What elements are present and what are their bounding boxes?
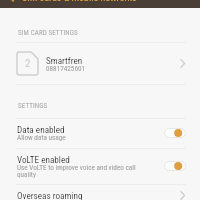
staticText: Data enabled: [17, 124, 65, 135]
staticText: Smartfren: [46, 55, 83, 66]
button[interactable]: 2: [0, 42, 200, 84]
staticText: Use VoLTE to improve voice and video cal…: [17, 163, 151, 179]
button[interactable]: Overseas roaming: [0, 185, 200, 200]
staticText: SIM cards & mobile networks: [22, 0, 137, 4]
staticText: 2: [25, 57, 31, 70]
button[interactable]: VoLTE enabled: [0, 148, 200, 184]
staticText: Overseas roaming: [17, 190, 178, 200]
staticText: SETTINGS: [18, 102, 48, 110]
button[interactable]: Back: [6, 0, 18, 4]
other: Open: [178, 59, 187, 68]
other: Open: [178, 191, 187, 200]
staticText: SIM CARD SETTINGS: [18, 29, 78, 37]
button[interactable]: Toggle: [164, 128, 186, 138]
button[interactable]: Back: [0, 0, 200, 8]
staticText: VoLTE enabled: [17, 154, 70, 165]
staticText: 08817425601: [46, 64, 86, 72]
button[interactable]: Data enabled: [0, 118, 200, 148]
staticText: Allow data usage: [17, 133, 66, 141]
button[interactable]: Toggle: [164, 161, 186, 171]
